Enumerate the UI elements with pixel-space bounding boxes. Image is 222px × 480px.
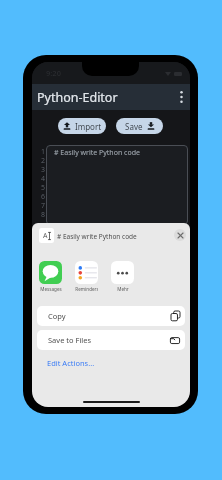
staticText: # Easily write Python code bbox=[54, 148, 140, 158]
staticText: 2 bbox=[35, 156, 45, 165]
button[interactable]: Copy bbox=[37, 306, 185, 326]
staticText: Mehr bbox=[117, 286, 129, 292]
staticText: 5 bbox=[35, 183, 45, 192]
button[interactable]: Edit Actions... bbox=[47, 358, 95, 368]
button[interactable]: Close bbox=[174, 229, 186, 241]
staticText: Python-Editor bbox=[37, 89, 118, 106]
staticText: # Easily write Python code bbox=[57, 232, 137, 241]
button[interactable]: Messages bbox=[39, 261, 62, 292]
staticText: 9:20 bbox=[46, 68, 61, 78]
button[interactable]: Save bbox=[116, 118, 163, 134]
staticText: 6 bbox=[35, 192, 45, 201]
button[interactable]: Import bbox=[58, 118, 106, 134]
button[interactable]: More options bbox=[172, 88, 190, 106]
button[interactable]: Reminders bbox=[75, 261, 98, 292]
staticText: 8 bbox=[35, 210, 45, 219]
staticText: Save to Files bbox=[48, 335, 92, 345]
staticText: 4 bbox=[35, 174, 45, 183]
staticText: 7 bbox=[35, 201, 45, 210]
staticText: Copy bbox=[48, 311, 66, 321]
staticText: Import bbox=[75, 121, 102, 132]
staticText: A bbox=[43, 231, 48, 241]
staticText: Reminders bbox=[75, 286, 98, 292]
staticText: 1 bbox=[35, 147, 45, 156]
staticText: Messages bbox=[40, 286, 62, 292]
staticText: Save bbox=[125, 121, 143, 132]
button[interactable]: Save to Files bbox=[37, 330, 185, 350]
button[interactable]: Mehr bbox=[111, 261, 134, 292]
staticText: 3 bbox=[35, 165, 45, 174]
